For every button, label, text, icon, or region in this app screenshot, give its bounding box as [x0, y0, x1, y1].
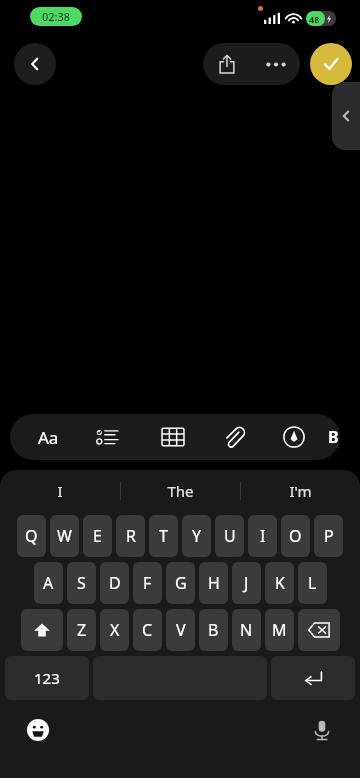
staticText: B [328, 426, 339, 448]
button[interactable]: C [133, 609, 162, 651]
staticText: S [77, 572, 86, 594]
button[interactable]: Attach [208, 414, 260, 460]
staticText: K [275, 572, 285, 594]
button[interactable]: Share [203, 43, 251, 85]
staticText: N [240, 619, 253, 641]
staticText: H [208, 572, 220, 594]
staticText: 123 [34, 668, 60, 688]
button[interactable]: B [199, 609, 228, 651]
button[interactable]: Z [67, 609, 96, 651]
button[interactable]: D [100, 562, 129, 604]
staticText: D [109, 572, 121, 594]
button[interactable]: H [199, 562, 228, 604]
button[interactable]: Q [17, 515, 46, 557]
button[interactable]: Y [182, 515, 211, 557]
button[interactable]: Bold [328, 414, 340, 460]
staticText: F [143, 572, 152, 594]
staticText: I [260, 525, 266, 547]
button[interactable]: G [166, 562, 195, 604]
button[interactable]: O [281, 515, 310, 557]
button[interactable]: T [149, 515, 178, 557]
button[interactable]: Draw [268, 414, 320, 460]
staticText: V [176, 619, 186, 641]
button[interactable]: Checklist [81, 414, 133, 460]
button[interactable]: S [67, 562, 96, 604]
staticText: E [93, 525, 102, 547]
staticText: J [244, 572, 249, 594]
button[interactable]: X [100, 609, 129, 651]
button[interactable]: More options [251, 43, 300, 85]
staticText: I'm [289, 481, 312, 501]
button[interactable]: M [265, 609, 294, 651]
staticText: Aa [38, 426, 59, 449]
button[interactable]: 123 [5, 656, 89, 700]
button[interactable]: V [166, 609, 195, 651]
staticText: X [110, 619, 120, 641]
staticText: B [208, 619, 219, 641]
button[interactable]: W [50, 515, 79, 557]
button[interactable]: Back [14, 43, 56, 85]
staticText: Z [77, 619, 87, 641]
button[interactable]: K [265, 562, 294, 604]
button[interactable]: I [0, 470, 120, 512]
staticText: 48 [309, 13, 320, 25]
button[interactable]: I'm [240, 470, 360, 512]
staticText: Y [192, 525, 202, 547]
button[interactable]: F [133, 562, 162, 604]
button[interactable]: U [215, 515, 244, 557]
staticText: M [272, 619, 287, 641]
staticText: O [289, 525, 302, 547]
button[interactable]: N [232, 609, 261, 651]
button[interactable]: I [248, 515, 277, 557]
button[interactable]: The [120, 470, 240, 512]
button[interactable]: E [83, 515, 112, 557]
staticText: L [308, 572, 317, 594]
button[interactable]: Open panel [332, 82, 360, 150]
staticText: C [142, 619, 153, 641]
staticText: G [175, 572, 187, 594]
staticText: 02:38 [42, 9, 71, 24]
button[interactable]: Enter [271, 656, 355, 700]
staticText: R [126, 525, 136, 547]
staticText: Q [25, 525, 38, 547]
staticText: U [224, 525, 236, 547]
button[interactable]: Voice input [306, 714, 338, 746]
staticText: I [57, 481, 63, 501]
staticText: T [159, 525, 168, 547]
button[interactable]: Emoji [22, 714, 54, 746]
button[interactable]: Done [310, 43, 352, 85]
button[interactable]: Text format [22, 414, 74, 460]
button[interactable]: L [298, 562, 327, 604]
button[interactable]: A [34, 562, 63, 604]
button[interactable]: R [116, 515, 145, 557]
button[interactable]: J [232, 562, 261, 604]
button[interactable]: Shift [21, 609, 63, 651]
staticText: W [57, 525, 72, 547]
button[interactable]: Backspace [298, 609, 340, 651]
staticText: P [324, 525, 334, 547]
staticText: The [167, 481, 194, 501]
staticText: A [43, 572, 54, 594]
button[interactable]: Table [147, 414, 199, 460]
button[interactable]: P [314, 515, 343, 557]
